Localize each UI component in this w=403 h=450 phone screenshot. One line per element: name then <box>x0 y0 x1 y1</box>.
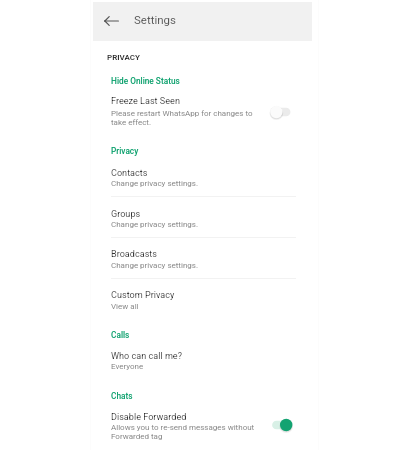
button[interactable] <box>93 91 312 128</box>
staticText: Calls <box>111 330 130 340</box>
button[interactable] <box>93 345 312 379</box>
button[interactable]: Settings <box>134 13 176 26</box>
staticText: Hide Online Status <box>111 76 180 86</box>
staticText: Change privacy settings. <box>111 261 199 270</box>
staticText: Privacy <box>111 146 139 156</box>
staticText: Everyone <box>111 362 144 371</box>
button[interactable]: Back <box>99 11 123 31</box>
button[interactable] <box>93 285 312 319</box>
staticText: Broadcasts <box>111 249 157 260</box>
button[interactable]: Freeze Last Seen, off <box>269 105 295 119</box>
staticText: Change privacy settings. <box>111 220 199 229</box>
staticText: PRIVACY <box>107 53 141 62</box>
staticText: Please restart WhatsApp for changes to t… <box>111 109 253 127</box>
staticText: Who can call me? <box>111 351 182 362</box>
staticText: Groups <box>111 209 141 220</box>
staticText: Custom Privacy <box>111 290 175 301</box>
staticText: Settings <box>134 13 176 26</box>
button[interactable] <box>93 244 312 278</box>
staticText: Chats <box>111 391 133 401</box>
staticText: Change privacy settings. <box>111 179 199 188</box>
button[interactable] <box>93 203 312 237</box>
button[interactable] <box>93 162 312 196</box>
staticText: Disable Forwarded <box>111 412 187 423</box>
staticText: View all <box>111 302 139 311</box>
staticText: Contacts <box>111 168 148 179</box>
staticText: Freeze Last Seen <box>111 96 180 107</box>
button[interactable] <box>93 407 312 450</box>
button[interactable]: Disable Forwarded, on <box>269 418 295 432</box>
staticText: Allows you to re-send messages without F… <box>111 423 255 441</box>
